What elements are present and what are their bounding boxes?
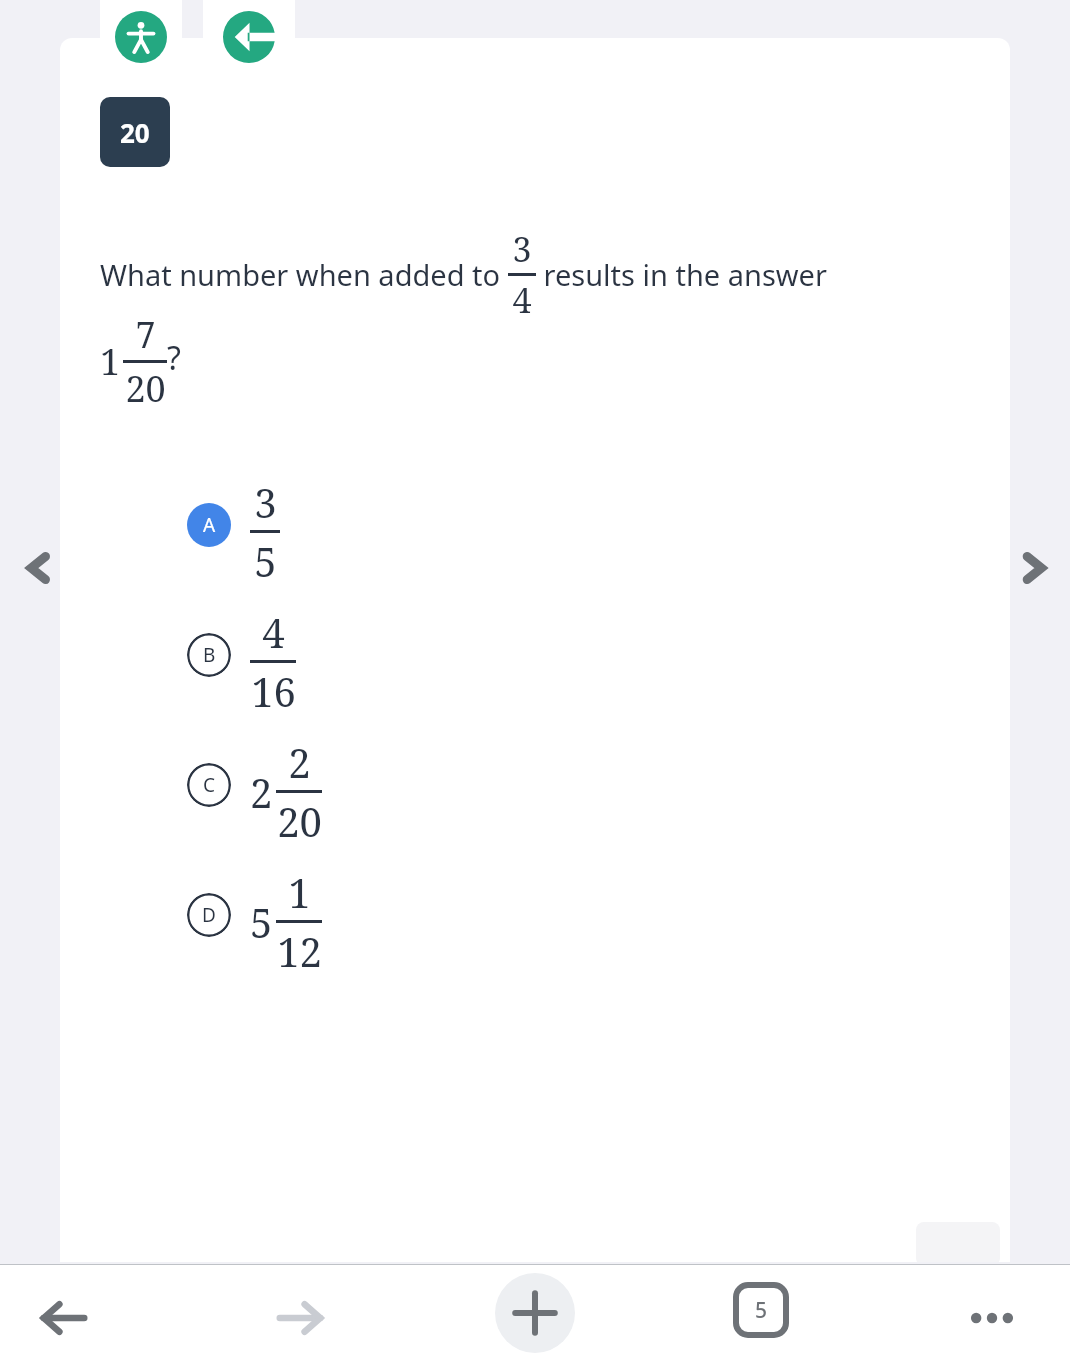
staticText: 5 [254,534,277,588]
staticText: 1 [100,337,121,386]
button[interactable]: New tab [495,1273,575,1353]
button[interactable]: Back [203,0,295,78]
staticText: 20 [120,115,150,150]
staticText: ? [167,336,181,380]
staticText: What number when added to [100,255,508,294]
staticText: 16 [251,664,296,718]
staticText: B [203,642,216,668]
staticText: C [203,772,216,798]
button[interactable]: A [60,460,1010,590]
button[interactable]: More options [952,1278,1032,1354]
button[interactable]: Previous question [10,540,66,596]
button[interactable]: Forward [260,1278,340,1354]
staticText: 5 [250,895,273,949]
staticText: 3 [254,475,277,529]
staticText: 4 [512,277,532,323]
button[interactable]: Back [24,1278,104,1354]
button[interactable]: Next question [1006,540,1062,596]
staticText: 3 [512,226,532,272]
staticText: 7 [135,310,156,359]
staticText: results in the answer [536,255,827,294]
staticText: 20 [277,794,322,848]
staticText: 4 [262,605,285,659]
button[interactable]: 20 [100,97,170,167]
button[interactable]: D [60,850,1010,980]
button[interactable]: Accessibility options [100,0,182,78]
button[interactable]: B [60,590,1010,720]
staticText: 2 [288,735,311,789]
staticText: 12 [277,924,322,978]
button[interactable]: Tabs, 5 open [732,1282,790,1338]
staticText: D [202,902,216,928]
staticText: 2 [250,765,273,819]
staticText: 1 [288,865,311,919]
staticText: A [203,512,216,538]
staticText: 5 [755,1296,768,1325]
button[interactable]: C [60,720,1010,850]
staticText: 20 [125,364,166,413]
